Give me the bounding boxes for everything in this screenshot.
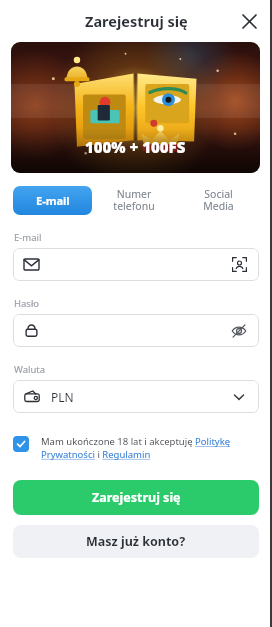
button[interactable]: Bonus banner 100% + 100FS bbox=[11, 42, 260, 173]
staticText: 100% + 100FS bbox=[85, 137, 186, 157]
staticText: PLN bbox=[51, 389, 74, 405]
staticText: Mam ukończone 18 lat i akceptuję Polityk… bbox=[41, 435, 258, 461]
staticText: Numer telefonu bbox=[113, 187, 155, 213]
staticText: Zarejestruj się bbox=[92, 489, 181, 506]
other: Currency bbox=[24, 389, 40, 405]
button[interactable]: Social Media bbox=[176, 185, 260, 215]
staticText: E-mail bbox=[36, 193, 70, 208]
staticText: Social Media bbox=[203, 187, 234, 213]
button[interactable]: Mam ukończone 18 lat i akceptuję Polityk… bbox=[13, 435, 258, 461]
staticText: Zarejestruj się bbox=[85, 11, 188, 31]
button[interactable]: Open currency list bbox=[230, 388, 248, 406]
button[interactable]: Password bbox=[13, 314, 259, 347]
other: Email bbox=[24, 257, 39, 272]
button[interactable]: Zarejestruj się bbox=[13, 480, 259, 515]
button[interactable]: Show password bbox=[230, 322, 248, 340]
button[interactable]: Autofill bbox=[231, 256, 248, 273]
staticText: E-mail bbox=[14, 231, 42, 244]
staticText: Masz już konto? bbox=[86, 533, 186, 550]
button[interactable]: Email bbox=[13, 248, 259, 281]
other: Password bbox=[24, 323, 39, 338]
button[interactable]: Close bbox=[235, 7, 263, 35]
staticText: Waluta bbox=[14, 363, 46, 376]
staticText: Hasło bbox=[14, 297, 40, 310]
button[interactable]: Numer telefonu bbox=[92, 185, 176, 215]
button[interactable]: Currency bbox=[13, 380, 259, 413]
button[interactable]: E-mail bbox=[13, 186, 92, 215]
button[interactable]: Masz już konto? bbox=[13, 525, 259, 558]
